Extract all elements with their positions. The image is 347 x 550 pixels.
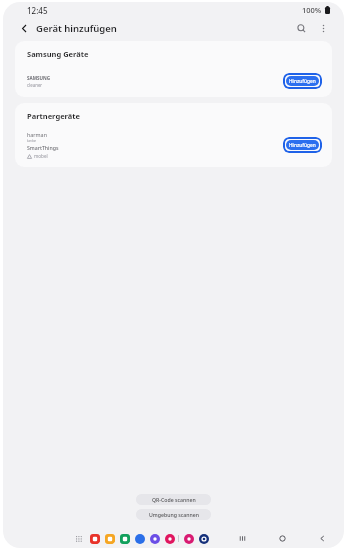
button[interactable]: App 5 bbox=[148, 532, 161, 545]
staticText: SAMSUNG bbox=[27, 75, 51, 81]
staticText: Samsung Geräte bbox=[27, 49, 89, 59]
staticText: Hinzufügen bbox=[289, 78, 316, 85]
staticText: kardon bbox=[27, 139, 37, 143]
staticText: Hinzufügen bbox=[289, 142, 316, 149]
button[interactable]: App 6 bbox=[163, 532, 176, 545]
button[interactable]: App 3 bbox=[118, 532, 131, 545]
staticText: QR-Code scannen bbox=[152, 496, 196, 503]
button[interactable]: Weitere Optionen bbox=[314, 19, 332, 37]
button[interactable]: Zurück bbox=[15, 19, 33, 37]
staticText: harman bbox=[27, 131, 47, 138]
staticText: Gerät hinzufügen bbox=[36, 22, 117, 35]
staticText: Umgebung scannen bbox=[149, 511, 199, 518]
button[interactable]: Suchen bbox=[292, 19, 310, 37]
staticText: 12:45 bbox=[27, 5, 48, 16]
button[interactable]: App 2 bbox=[103, 532, 116, 545]
button[interactable]: Einstellungen bbox=[182, 532, 195, 545]
button[interactable]: Startbildschirm bbox=[274, 530, 290, 546]
button[interactable]: Hinzufügen bbox=[286, 140, 319, 150]
button[interactable]: Galerie bbox=[197, 532, 210, 545]
staticText: cleaner bbox=[27, 82, 43, 88]
button[interactable]: Apps bbox=[73, 533, 84, 544]
button[interactable]: App 1 bbox=[88, 532, 101, 545]
staticText: Partnergeräte bbox=[27, 111, 81, 121]
button[interactable]: App 4 bbox=[133, 532, 146, 545]
button[interactable]: Zurück bbox=[314, 530, 330, 546]
button[interactable]: Hinzufügen bbox=[286, 76, 319, 86]
button[interactable]: Umgebung scannen bbox=[136, 509, 211, 520]
staticText: SmartThings bbox=[27, 144, 59, 151]
staticText: mobel bbox=[34, 153, 48, 159]
staticText: 100% bbox=[302, 5, 322, 15]
button[interactable]: Letzte Apps bbox=[234, 530, 250, 546]
button[interactable]: QR-Code scannen bbox=[136, 494, 211, 505]
